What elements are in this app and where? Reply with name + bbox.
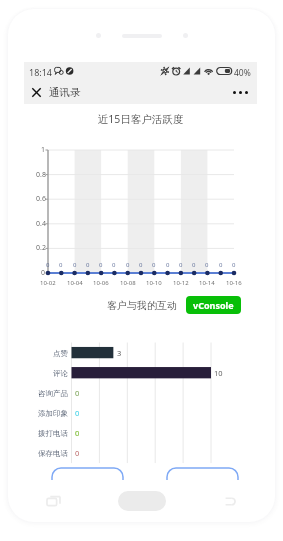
staticText: 10-04 <box>67 279 83 287</box>
staticText: 0 <box>41 268 46 278</box>
staticText: 0 <box>192 261 196 269</box>
staticText: 通讯录 <box>49 86 81 99</box>
staticText: 1 <box>41 145 46 155</box>
staticText: 0 <box>139 261 143 269</box>
staticText: 0 <box>219 261 223 269</box>
staticText: 0 <box>179 261 183 269</box>
staticText: 0 <box>152 261 156 269</box>
staticText: 0 <box>73 261 77 269</box>
button[interactable]: Close <box>27 83 46 102</box>
staticText: 0 <box>99 261 103 269</box>
staticText: 评论 <box>53 369 68 378</box>
staticText: 添加印象 <box>38 409 68 418</box>
button[interactable]: More options <box>230 82 250 102</box>
staticText: 10-08 <box>120 279 136 287</box>
staticText: 10-02 <box>40 279 56 287</box>
staticText: 0 <box>205 261 209 269</box>
staticText: 0.4 <box>36 219 46 229</box>
staticText: 0 <box>86 261 90 269</box>
staticText: 0.2 <box>36 243 46 253</box>
staticText: 10-10 <box>146 279 162 287</box>
staticText: 40% <box>234 67 251 79</box>
staticText: 咨询产品 <box>38 389 68 398</box>
button[interactable]: Recents <box>42 490 64 512</box>
staticText: 0 <box>75 428 80 438</box>
staticText: 0 <box>112 261 116 269</box>
button[interactable]: Home <box>118 491 166 511</box>
staticText: 客户与我的互动 <box>107 299 177 312</box>
staticText: 0.6 <box>36 194 46 204</box>
staticText: 0 <box>59 261 63 269</box>
staticText: 0 <box>75 388 80 398</box>
staticText: 0 <box>75 408 80 418</box>
staticText: 0 <box>232 261 236 269</box>
staticText: 拨打电话 <box>38 429 68 438</box>
staticText: 0 <box>75 448 80 458</box>
staticText: vConsole <box>193 299 234 311</box>
staticText: 0 <box>46 261 50 269</box>
staticText: 0 <box>126 261 130 269</box>
staticText: 10 <box>214 368 223 378</box>
staticText: 0 <box>166 261 170 269</box>
staticText: 3 <box>117 348 122 358</box>
staticText: 近15日客户活跃度 <box>24 112 257 126</box>
staticText: 0.8 <box>36 170 46 180</box>
button[interactable]: Back <box>219 490 241 512</box>
staticText: 10-14 <box>199 279 215 287</box>
staticText: 保存电话 <box>38 449 68 458</box>
staticText: 10-16 <box>226 279 242 287</box>
button[interactable]: vConsole <box>186 296 241 314</box>
staticText: 10-06 <box>93 279 109 287</box>
staticText: 18:14 <box>29 66 53 78</box>
staticText: 点赞 <box>53 349 68 358</box>
staticText: 10-12 <box>173 279 189 287</box>
